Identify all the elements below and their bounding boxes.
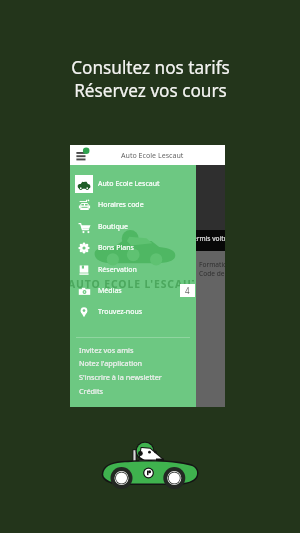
staticText: Auto Ecole Lescaut [121, 150, 184, 160]
staticText: Médias [98, 286, 122, 296]
staticText: Horaires code [98, 200, 144, 210]
staticText: Crédits [79, 386, 104, 396]
staticText: Permis voiture - Conduite [189, 234, 225, 243]
staticText: Auto Ecole Lescaut [98, 179, 160, 189]
button[interactable]: Invitez vos amis [70, 343, 196, 357]
staticText: Trouvez-nous [98, 307, 143, 317]
button[interactable]: Médias [70, 280, 196, 301]
button[interactable]: Bons Plans [70, 237, 196, 258]
button[interactable]: Réservation [70, 259, 196, 280]
staticText: Consultez nos tarifs Réservez vos cours [71, 56, 230, 102]
staticText: AUTO ECOLE L'ESCAUT [70, 277, 194, 291]
button[interactable]: Boutique [70, 216, 196, 237]
button[interactable]: Crédits [70, 384, 196, 398]
button[interactable]: Auto Ecole Lescaut [70, 173, 196, 194]
staticText: Invitez vos amis [79, 345, 134, 355]
button[interactable]: Horaires code [70, 194, 196, 215]
button[interactable]: Open navigation drawer [70, 145, 94, 165]
staticText: 4 [185, 285, 190, 296]
button[interactable]: S'inscrire à la newsletter [70, 370, 196, 384]
staticText: Formation Code de la route [199, 260, 225, 278]
staticText: Réservation [98, 265, 137, 275]
staticText: Boutique [98, 222, 129, 232]
button[interactable]: Notez l'application [70, 356, 196, 370]
staticText: S'inscrire à la newsletter [79, 372, 162, 382]
staticText: Bons Plans [98, 243, 134, 253]
staticText: Notez l'application [79, 358, 143, 368]
button[interactable]: Trouvez-nous [70, 301, 196, 322]
